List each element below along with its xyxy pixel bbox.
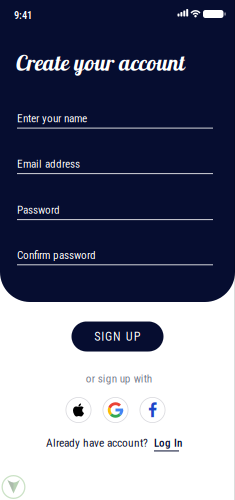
- staticText: G: [105, 329, 112, 344]
- staticText: 9:41: [14, 9, 32, 21]
- button[interactable]: S: [71, 321, 163, 351]
- button[interactable]: Log In: [154, 436, 182, 449]
- staticText: Enter your name: [17, 112, 87, 125]
- staticText: Log In: [154, 436, 182, 449]
- button[interactable]: Sign up with Google: [102, 397, 128, 423]
- staticText: Password: [17, 203, 60, 216]
- button[interactable]: Enter your name: [17, 112, 213, 129]
- button[interactable]: Sign up with Facebook: [139, 397, 165, 423]
- staticText: or sign up with: [86, 372, 152, 385]
- staticText: P: [134, 329, 141, 344]
- button[interactable]: Sign up with Apple: [65, 397, 91, 423]
- staticText: U: [126, 329, 133, 344]
- staticText: I: [101, 329, 104, 344]
- button[interactable]: Confirm password: [17, 248, 213, 265]
- staticText: S: [94, 329, 100, 344]
- button[interactable]: Email address: [17, 157, 213, 174]
- staticText: Create your account: [16, 48, 185, 79]
- staticText: Confirm password: [17, 248, 96, 262]
- staticText: : [148, 402, 157, 418]
- button[interactable]: Password: [17, 203, 213, 220]
- staticText: Email address: [17, 157, 80, 170]
- staticText: N: [113, 329, 121, 344]
- staticText: Already have account?: [46, 436, 148, 450]
